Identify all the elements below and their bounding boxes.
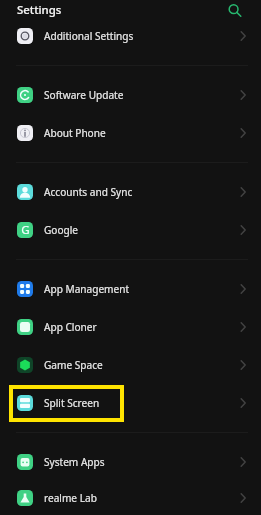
button[interactable]: G xyxy=(0,211,261,249)
staticText: Additional Settings xyxy=(44,29,134,43)
staticText: Software Update xyxy=(44,88,124,102)
staticText: Game Space xyxy=(44,358,103,372)
staticText: realme Lab xyxy=(44,491,97,505)
staticText: Settings xyxy=(17,2,62,17)
button[interactable]: System Apps xyxy=(0,443,261,481)
button[interactable]: Split Screen xyxy=(0,384,261,422)
button[interactable]: App Cloner xyxy=(0,308,261,346)
staticText: App Management xyxy=(44,282,130,296)
button[interactable]: About Phone xyxy=(0,114,261,152)
staticText: Google xyxy=(44,223,79,237)
staticText: G xyxy=(21,222,30,238)
button[interactable]: App Management xyxy=(0,270,261,308)
staticText: System Apps xyxy=(44,455,105,469)
staticText: App Cloner xyxy=(44,320,97,334)
staticText: Accounts and Sync xyxy=(44,185,133,199)
button[interactable]: Software Update xyxy=(0,76,261,114)
button[interactable]: realme Lab xyxy=(0,481,261,515)
staticText: Split Screen xyxy=(44,396,100,410)
button[interactable]: Game Space xyxy=(0,346,261,384)
button[interactable]: Additional Settings xyxy=(0,17,261,55)
button[interactable]: Accounts and Sync xyxy=(0,173,261,211)
staticText: About Phone xyxy=(44,126,106,140)
button[interactable]: Search xyxy=(225,0,245,17)
